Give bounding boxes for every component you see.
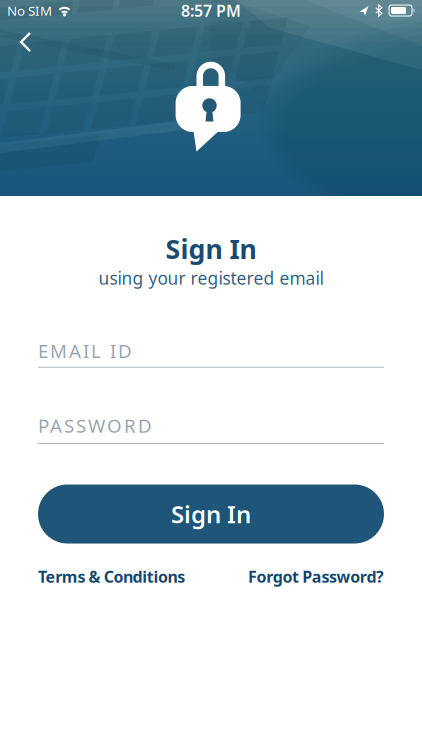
staticText: No SIM: [7, 2, 52, 19]
textField[interactable]: EMAIL ID: [38, 338, 384, 368]
staticText: using your registered email: [98, 266, 323, 289]
staticText: Sign In: [165, 231, 256, 266]
staticText: 8:57 PM: [181, 0, 241, 21]
staticText: Sign In: [171, 498, 251, 530]
textField[interactable]: PASSWORD: [38, 413, 384, 444]
button[interactable]: Back: [0, 29, 44, 55]
staticText: Terms & Conditions: [38, 566, 185, 587]
staticText: EMAIL ID: [38, 338, 132, 363]
button[interactable]: Sign In: [38, 484, 384, 543]
button[interactable]: Forgot Password?: [248, 566, 384, 587]
staticText: PASSWORD: [38, 413, 152, 438]
staticText: Forgot Password?: [248, 566, 384, 587]
button[interactable]: Terms & Conditions: [38, 566, 185, 587]
